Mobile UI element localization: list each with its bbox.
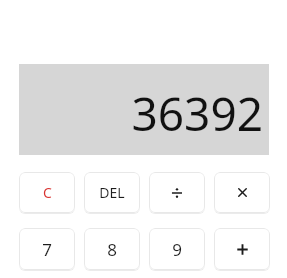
button[interactable]: Multiply (214, 172, 270, 213)
button[interactable]: DEL (84, 172, 140, 213)
button[interactable]: 9 (149, 228, 205, 270)
staticText: C (43, 183, 52, 202)
staticText: 9 (172, 238, 182, 261)
button[interactable]: 36392 (19, 64, 269, 155)
button[interactable]: C (19, 172, 75, 213)
staticText: 8 (107, 238, 117, 261)
button[interactable]: Divide (149, 172, 205, 213)
button[interactable]: 7 (19, 228, 75, 270)
staticText: 36392 (131, 82, 263, 145)
button[interactable]: Add (214, 228, 270, 270)
staticText: 7 (42, 238, 52, 261)
staticText: DEL (99, 183, 125, 202)
button[interactable]: 8 (84, 228, 140, 270)
